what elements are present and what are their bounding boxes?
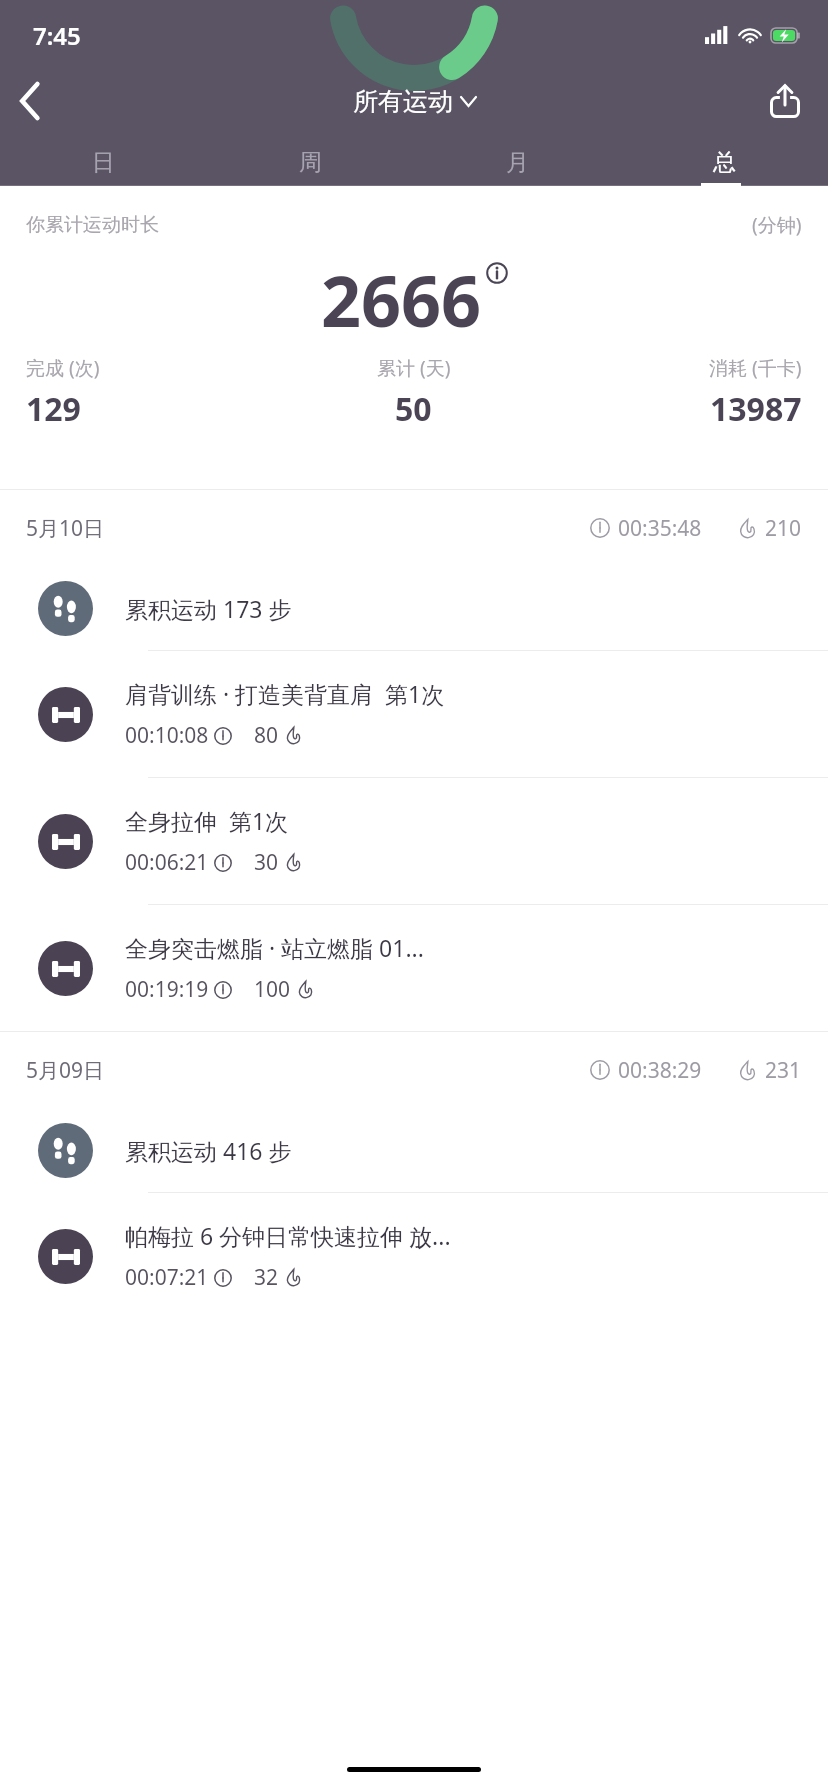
staticText: 帕梅拉 6 分钟日常快速拉伸 放... <box>125 1220 451 1251</box>
staticText: 消耗 (千卡) <box>709 355 802 381</box>
staticText: 全身拉伸 第1次 <box>125 805 289 836</box>
staticText: 00:10:08 <box>125 721 209 750</box>
staticText: 13987 <box>710 387 802 431</box>
staticText: 32 <box>254 1263 279 1292</box>
staticText: 129 <box>26 387 81 431</box>
staticText: 50 <box>395 387 432 431</box>
staticText: 累积运动 173 步 <box>125 593 292 624</box>
staticText: 2666 <box>321 252 482 347</box>
button[interactable]: 月 <box>414 138 621 186</box>
staticText: 00:06:21 <box>125 848 209 877</box>
button[interactable]: 累积运动 416 步 <box>0 1108 828 1192</box>
button[interactable]: Share <box>756 72 814 130</box>
staticText: 日 <box>92 148 115 177</box>
button[interactable]: 总 <box>621 138 828 186</box>
button[interactable]: 累积运动 173 步 <box>0 566 828 650</box>
staticText: 00:07:21 <box>125 1263 209 1292</box>
staticText: 累计 (天) <box>377 355 451 381</box>
staticText: 210 <box>765 514 802 543</box>
staticText: 肩背训练 · 打造美背直肩 第1次 <box>125 678 445 709</box>
button[interactable]: 周 <box>207 138 414 186</box>
button[interactable]: 帕梅拉 6 分钟日常快速拉伸 放... <box>0 1193 828 1319</box>
button[interactable]: 全身拉伸 第1次 <box>0 778 828 904</box>
staticText: 5月10日 <box>26 514 105 543</box>
staticText: 全身突击燃脂 · 站立燃脂 01... <box>125 932 424 963</box>
staticText: 7:45 <box>33 19 81 52</box>
button[interactable]: Back <box>0 70 62 132</box>
staticText: 00:35:48 <box>618 514 702 543</box>
staticText: 00:19:19 <box>125 975 209 1004</box>
staticText: 总 <box>713 148 736 177</box>
button[interactable]: 日 <box>0 138 207 186</box>
staticText: 月 <box>506 148 529 177</box>
staticText: 30 <box>254 848 279 877</box>
staticText: 所有运动 <box>353 86 453 117</box>
staticText: 5月09日 <box>26 1056 105 1085</box>
staticText: 周 <box>299 148 322 177</box>
button[interactable]: 全身突击燃脂 · 站立燃脂 01... <box>0 905 828 1031</box>
staticText: 00:38:29 <box>618 1056 702 1085</box>
button[interactable]: 所有运动 <box>353 86 476 117</box>
staticText: 完成 (次) <box>26 355 100 381</box>
staticText: (分钟) <box>752 212 802 238</box>
staticText: 231 <box>765 1056 802 1085</box>
staticText: 100 <box>254 975 291 1004</box>
button[interactable]: 肩背训练 · 打造美背直肩 第1次 <box>0 651 828 777</box>
staticText: 你累计运动时长 <box>26 213 159 237</box>
staticText: 80 <box>254 721 279 750</box>
staticText: 累积运动 416 步 <box>125 1135 292 1166</box>
